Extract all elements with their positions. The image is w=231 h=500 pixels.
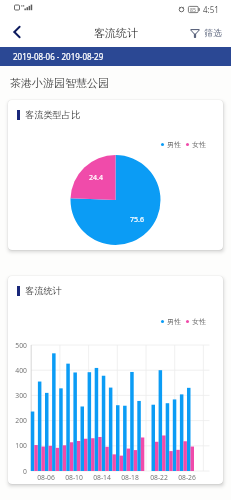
staticText: 男性 [167,317,181,326]
staticText: 100 [8,441,27,450]
staticText: 08-26 [174,473,200,482]
staticText: 客流统计 [94,26,138,40]
staticText: 08-14 [89,473,115,482]
staticText: 24.4 [82,173,110,183]
staticText: 400 [8,366,27,375]
staticText: 08-10 [61,473,87,482]
staticText: 4:51 [203,4,219,15]
staticText: 08-06 [33,473,59,482]
staticText: 85 [190,6,196,13]
staticText: 筛选 [204,27,222,38]
staticText: 客流类型占比 [25,109,81,121]
staticText: 300 [8,391,27,400]
staticText: 2019-08-06 - 2019-08-29 [13,51,104,62]
staticText: 500 [8,341,27,350]
staticText: 75.6 [123,215,151,225]
staticText: 茶港小游园智慧公园 [10,76,109,90]
staticText: 08-22 [146,473,172,482]
staticText: 女性 [192,317,206,326]
button[interactable]: 筛选 [190,18,222,47]
button[interactable]: 客流统计 [8,276,223,484]
staticText: 0 [8,467,27,476]
button[interactable]: 客流类型占比 [8,100,223,250]
staticText: 女性 [192,140,206,149]
staticText: 200 [8,416,27,425]
staticText: 客流统计 [25,285,62,297]
staticText: 08-18 [117,473,143,482]
button[interactable]: Back [0,18,33,47]
staticText: 男性 [167,140,181,149]
